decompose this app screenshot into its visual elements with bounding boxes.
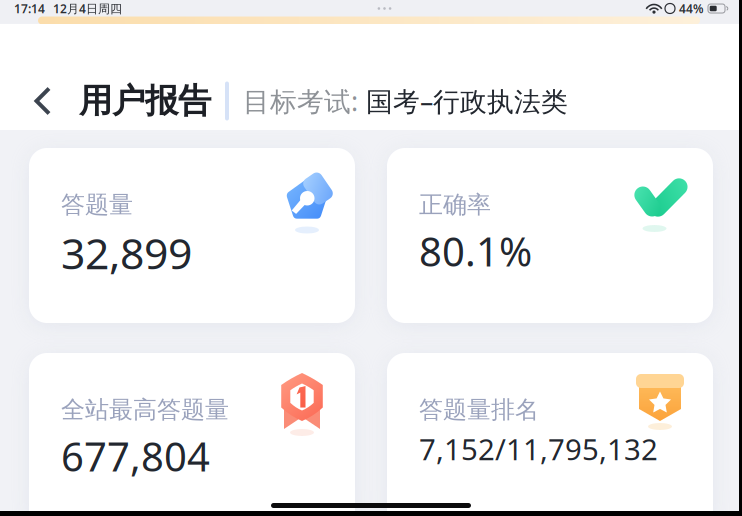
staticText: 目标考试: — [243, 83, 358, 119]
staticText: 答题量排名 — [419, 395, 539, 424]
staticText: 80.1% — [419, 224, 532, 278]
button[interactable]: 答题量排名 — [387, 353, 713, 516]
button[interactable]: 全站最高答题量 — [29, 353, 355, 516]
button[interactable]: 答题量 — [29, 148, 355, 323]
button[interactable]: Back — [0, 73, 79, 129]
staticText: 国考–行政执法类 — [366, 83, 568, 119]
button[interactable]: 正确率 — [387, 148, 713, 323]
staticText: 正确率 — [419, 190, 491, 219]
staticText: 答题量 — [61, 190, 133, 219]
staticText: 32,899 — [61, 224, 192, 281]
staticText: 17:14 — [14, 0, 45, 16]
staticText: 全站最高答题量 — [61, 395, 229, 424]
staticText: 用户报告 — [79, 80, 211, 121]
staticText: 12月4日周四 — [53, 0, 122, 16]
staticText: 677,804 — [61, 429, 210, 483]
staticText: 44% — [679, 0, 704, 16]
staticText: 7,152/11,795,132 — [419, 429, 658, 468]
